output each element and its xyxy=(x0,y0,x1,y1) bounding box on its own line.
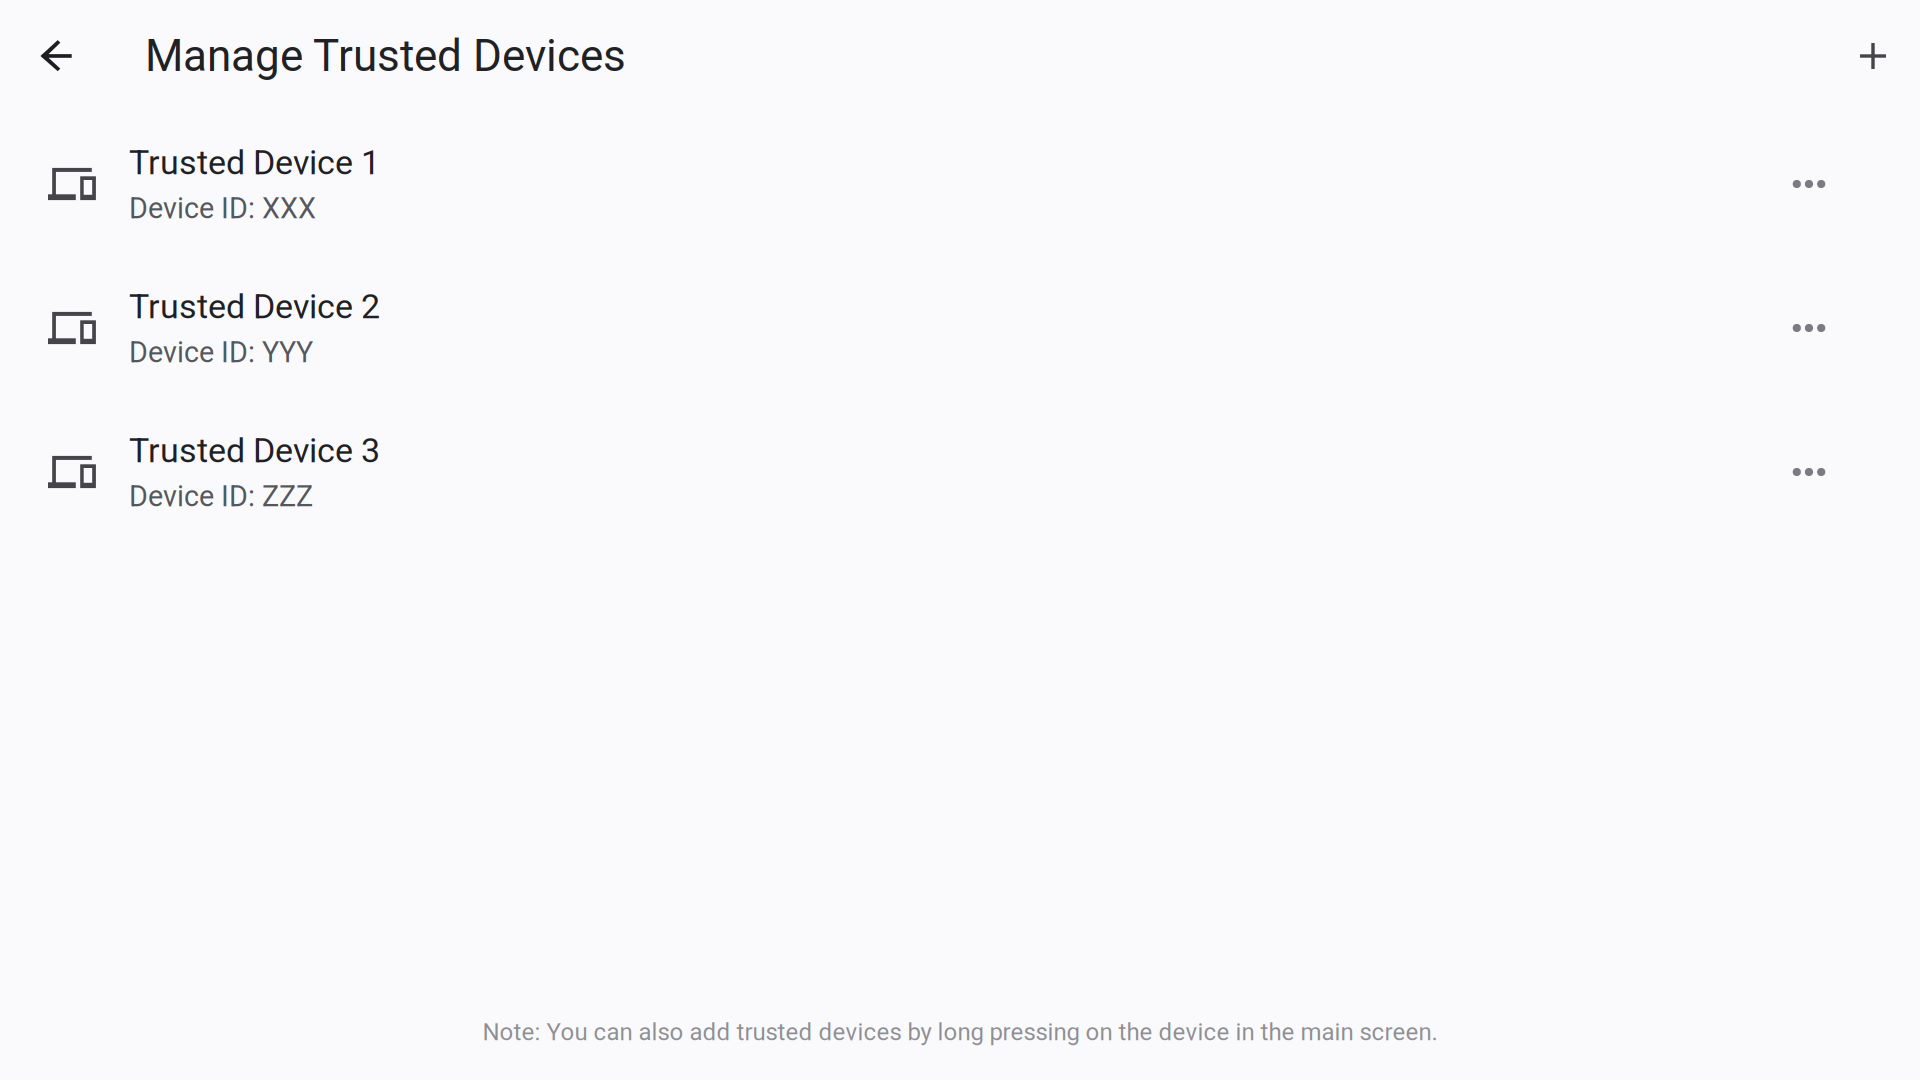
staticText: Trusted Device 3 xyxy=(129,431,380,471)
staticText: Device ID: ZZZ xyxy=(129,480,313,513)
staticText: Trusted Device 1 xyxy=(129,143,380,183)
button[interactable]: More options for Trusted Device 2 xyxy=(1761,280,1857,376)
staticText: Trusted Device 2 xyxy=(129,287,380,327)
button[interactable]: Trusted Device 1 xyxy=(0,112,1920,256)
button[interactable]: Back xyxy=(0,0,145,112)
button[interactable]: Trusted Device 3 xyxy=(0,400,1920,544)
button[interactable]: More options for Trusted Device 1 xyxy=(1761,136,1857,232)
staticText: Note: You can also add trusted devices b… xyxy=(482,1018,1437,1046)
button[interactable]: Trusted Device 2 xyxy=(0,256,1920,400)
button[interactable]: More options for Trusted Device 3 xyxy=(1761,424,1857,520)
staticText: Device ID: XXX xyxy=(129,192,316,225)
button[interactable]: Add trusted device xyxy=(1860,0,1920,112)
staticText: Manage Trusted Devices xyxy=(145,30,626,82)
staticText: Device ID: YYY xyxy=(129,336,313,369)
